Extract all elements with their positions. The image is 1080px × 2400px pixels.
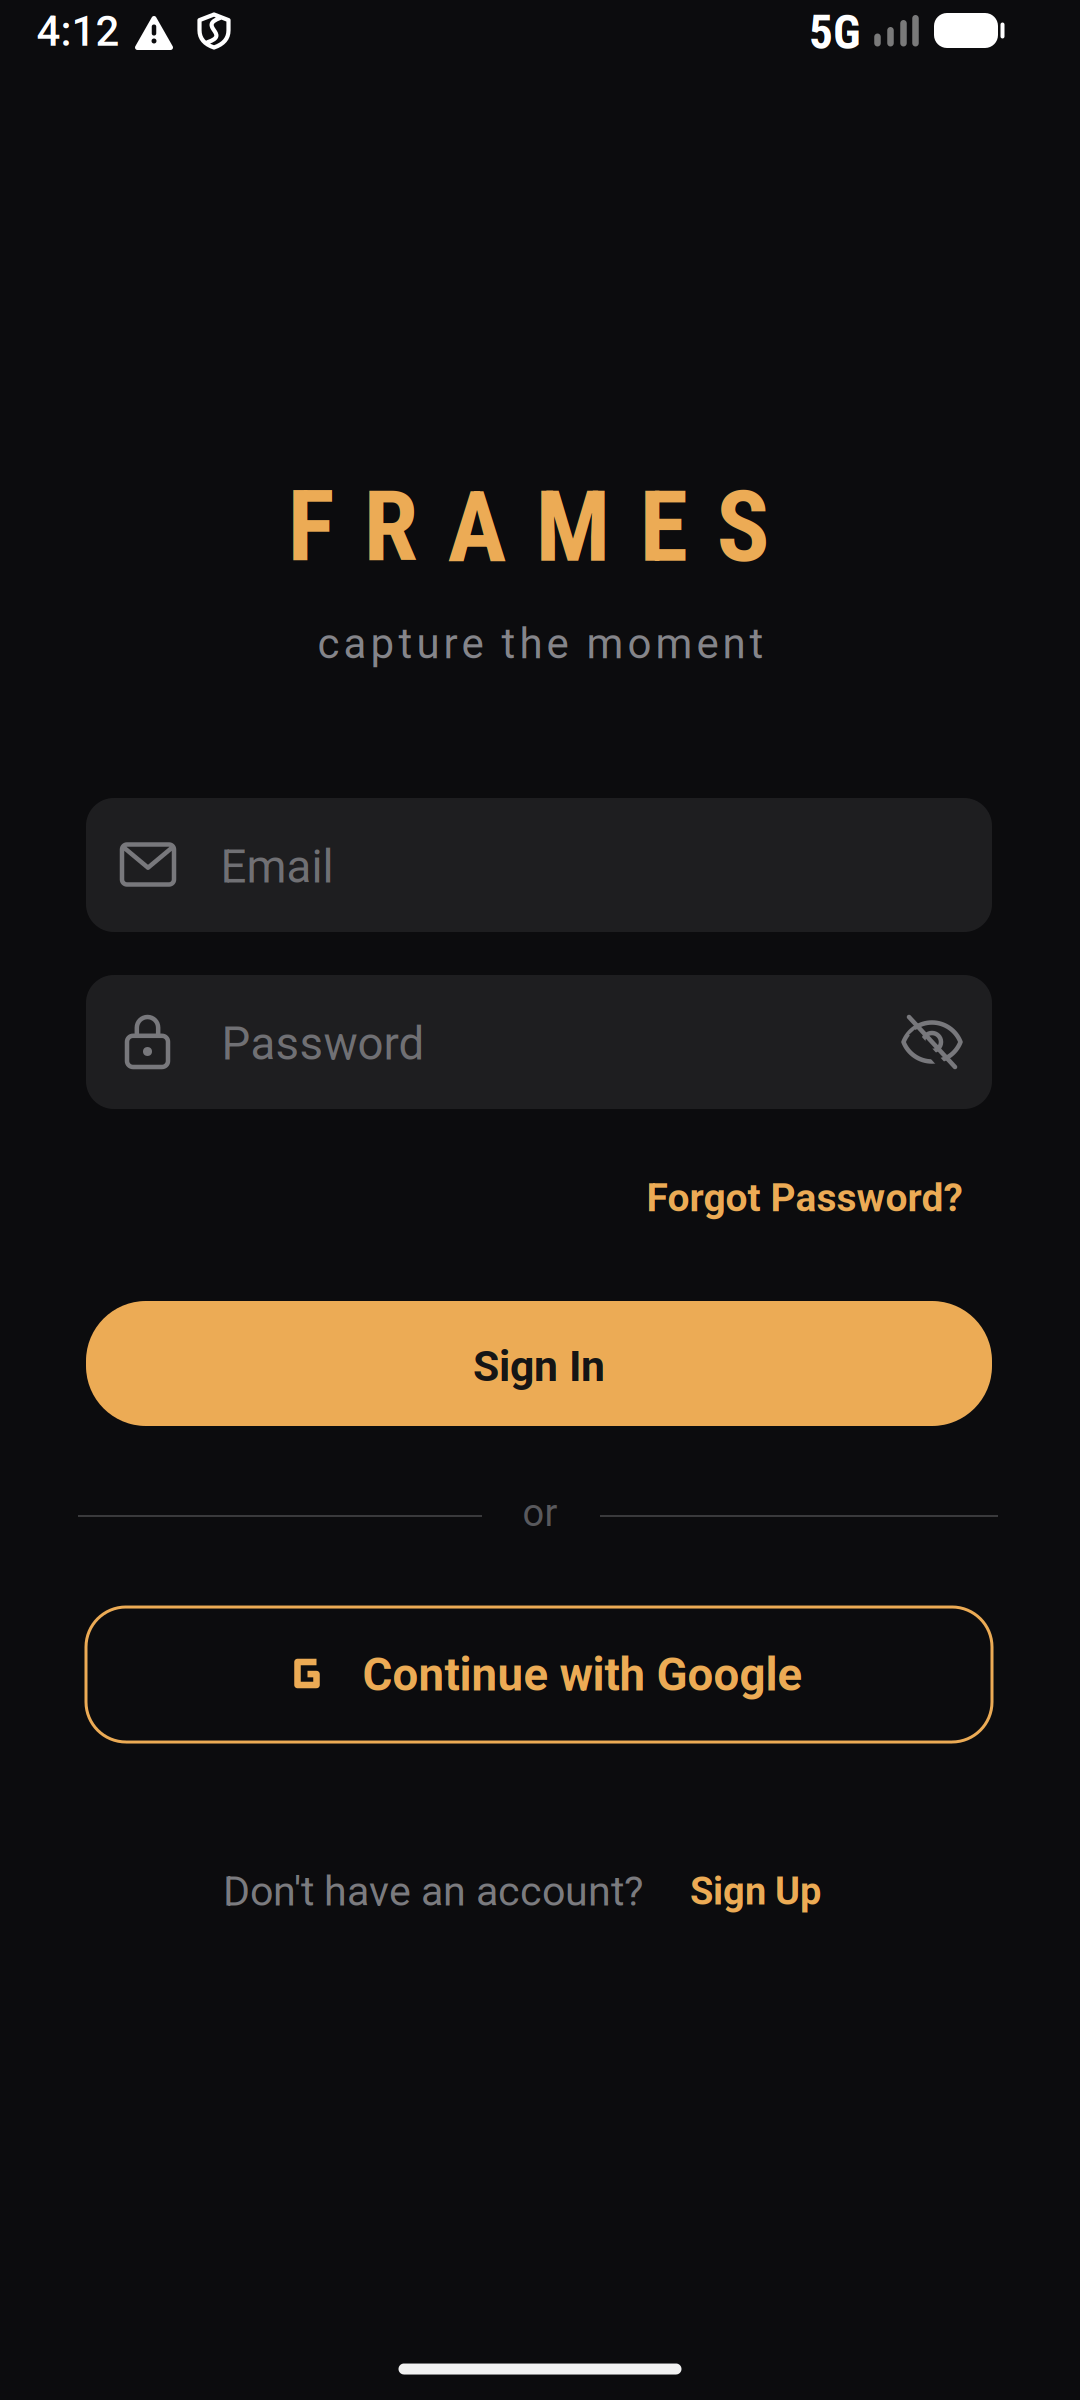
button[interactable]: Password [86, 975, 992, 1109]
staticText: Email [220, 840, 333, 894]
staticText: Forgot Password? [646, 1175, 962, 1221]
staticText: or [522, 1491, 557, 1535]
staticText: Continue with Google [362, 1648, 802, 1702]
staticText: Password [221, 1017, 424, 1071]
button[interactable]: Sign In [86, 1301, 992, 1426]
button[interactable]: Continue with Google [86, 1607, 992, 1742]
button[interactable]: Forgot Password? [646, 1175, 962, 1221]
staticText: 4:12 [36, 7, 119, 56]
staticText: 5G [809, 5, 861, 60]
staticText: FRAMES [287, 469, 769, 585]
button[interactable]: Sign Up [690, 1869, 821, 1914]
staticText: Sign In [473, 1341, 605, 1391]
staticText: Sign Up [690, 1869, 821, 1914]
button[interactable]: Email [86, 798, 992, 932]
button[interactable]: Show password [897, 1007, 967, 1077]
staticText: capture the moment [317, 619, 763, 669]
staticText: Don't have an account? [223, 1867, 643, 1916]
